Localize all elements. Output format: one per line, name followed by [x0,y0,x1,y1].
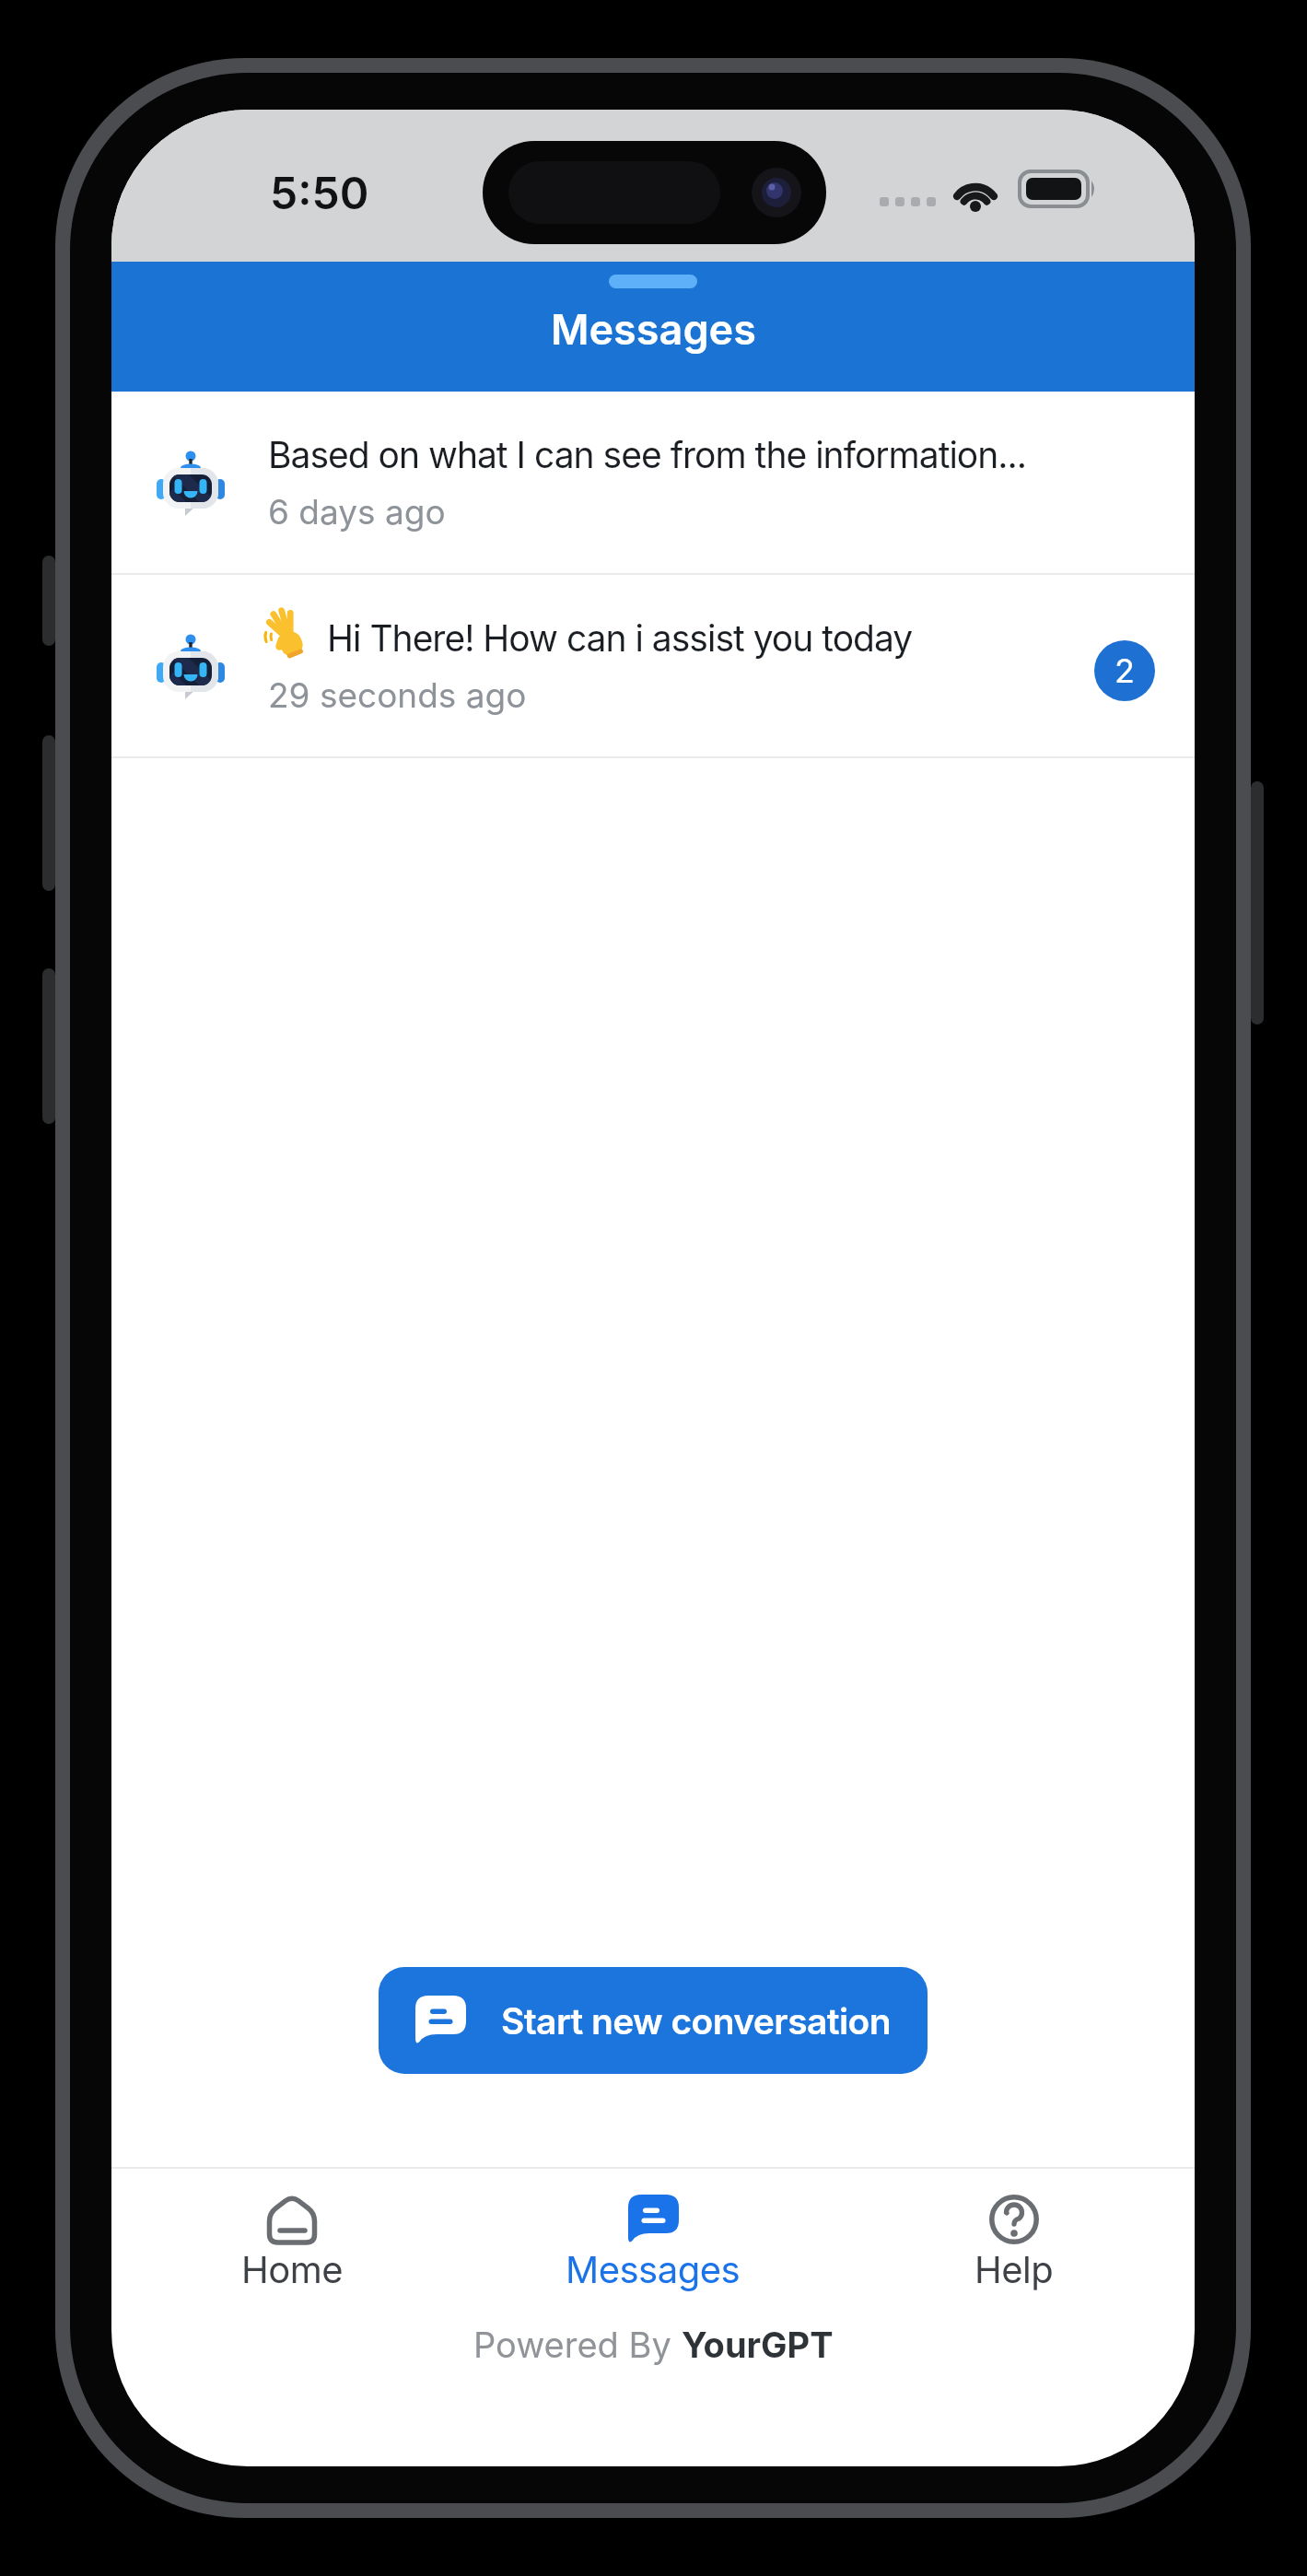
staticText: 2 [1114,650,1135,691]
staticText: Messages [566,2247,741,2291]
staticText: Messages [551,304,756,354]
staticText: Hi There! How can i assist you today [327,616,913,660]
staticText: Powered By [473,2324,682,2366]
staticText: 5:50 [270,166,369,219]
staticText: Help [974,2247,1054,2291]
button[interactable]: Powered By [111,2324,1195,2366]
staticText: 6 days ago [268,491,446,533]
button[interactable]: Based on what I can see from the informa… [111,392,1195,573]
staticText: YourGPT [682,2324,834,2366]
staticText: Home [241,2247,344,2291]
button[interactable]: Hi There! How can i assist you today [111,575,1195,756]
button[interactable]: Start new conversation [379,1967,928,2074]
staticText: 29 seconds ago [268,674,527,716]
button[interactable]: Home [111,2193,473,2292]
staticText: Based on what I can see from the informa… [268,433,1026,476]
button[interactable]: Messages [473,2193,834,2292]
button[interactable]: Help [834,2193,1195,2292]
staticText: Start new conversation [501,1999,891,2043]
